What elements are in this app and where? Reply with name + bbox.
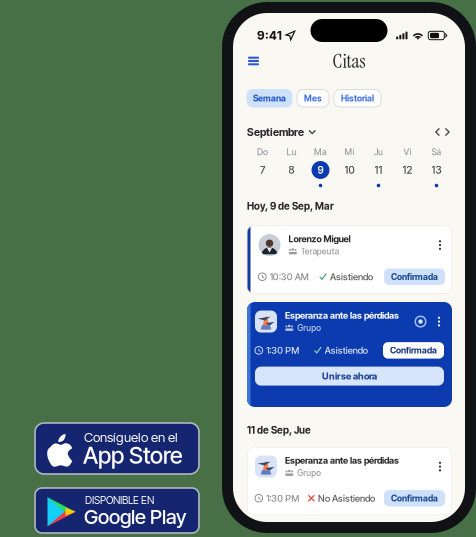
staticText: Google Play (84, 504, 186, 529)
button[interactable]: Lu (278, 147, 304, 188)
staticText: Sá (431, 147, 441, 157)
staticText: DISPONIBLE EN (85, 494, 154, 507)
staticText: Grupo (297, 468, 321, 478)
staticText: Grupo (297, 323, 321, 333)
staticText: Consíguelo en el (84, 429, 178, 445)
staticText: Unirse ahora (322, 370, 377, 382)
staticText: 8 (288, 164, 294, 176)
staticText: Terapeuta (301, 246, 339, 257)
button[interactable]: Mes siguiente (442, 125, 452, 139)
staticText: Semana (253, 93, 286, 103)
staticText: Asistiendo (325, 345, 368, 356)
button[interactable]: Do (249, 147, 275, 188)
staticText: Confirmada (391, 493, 438, 503)
staticText: 10:30 AM (270, 271, 309, 282)
staticText: Confirmada (391, 271, 438, 282)
staticText: 1:30 PM (266, 345, 299, 356)
button[interactable]: Ma (307, 147, 333, 188)
staticText: 7 (260, 164, 265, 176)
button[interactable]: Esperanza ante las pérdidas (247, 447, 452, 515)
button[interactable]: Mi (336, 147, 362, 188)
button[interactable]: Mes (297, 89, 329, 107)
staticText: 9 (317, 164, 323, 176)
button[interactable]: Sá (423, 147, 449, 188)
button[interactable]: Esperanza ante las pérdidas (247, 302, 452, 407)
button[interactable]: Confirmada (384, 268, 445, 285)
staticText: Esperanza ante las pérdidas (285, 455, 399, 466)
staticText: Mi (344, 147, 354, 157)
staticText: Citas (332, 48, 365, 74)
button[interactable]: Consíguelo en el App Store (35, 423, 199, 474)
staticText: Lorenzo Miguel (288, 233, 350, 244)
staticText: Lu (286, 147, 296, 157)
button[interactable]: Historial (334, 89, 381, 107)
staticText: 11 de Sep, Jue (247, 424, 311, 436)
button[interactable]: Semana (247, 89, 292, 107)
button[interactable]: Disponible en Google Play (35, 488, 199, 533)
button[interactable]: Menu (244, 53, 263, 69)
staticText: Ma (314, 147, 327, 157)
button[interactable]: Confirmada (383, 342, 444, 359)
staticText: Septiembre (247, 125, 304, 138)
staticText: No Asistiendo (318, 493, 375, 504)
staticText: 12 (402, 164, 412, 176)
staticText: Ju (374, 147, 383, 157)
staticText: 10 (344, 164, 354, 176)
staticText: 1:30 PM (266, 493, 299, 504)
staticText: Historial (341, 93, 374, 103)
button[interactable]: Unirse ahora (255, 367, 444, 386)
staticText: App Store (83, 441, 183, 469)
button[interactable]: Mes anterior (433, 125, 442, 139)
button[interactable]: Confirmada (384, 490, 445, 506)
button[interactable]: Lorenzo Miguel (247, 225, 452, 293)
staticText: Do (257, 147, 268, 157)
staticText: 11 (374, 164, 382, 176)
button[interactable]: Ju (365, 147, 391, 188)
staticText: Mes (304, 93, 322, 103)
staticText: Asistiendo (330, 271, 373, 282)
staticText: Confirmada (390, 345, 437, 356)
staticText: 13 (431, 164, 441, 176)
staticText: Esperanza ante las pérdidas (285, 310, 399, 321)
staticText: Hoy, 9 de Sep, Mar (247, 200, 334, 212)
staticText: 9:41 (257, 28, 282, 43)
button[interactable]: Vi (394, 147, 420, 188)
staticText: Vi (403, 147, 411, 157)
button[interactable]: Septiembre (247, 125, 315, 139)
